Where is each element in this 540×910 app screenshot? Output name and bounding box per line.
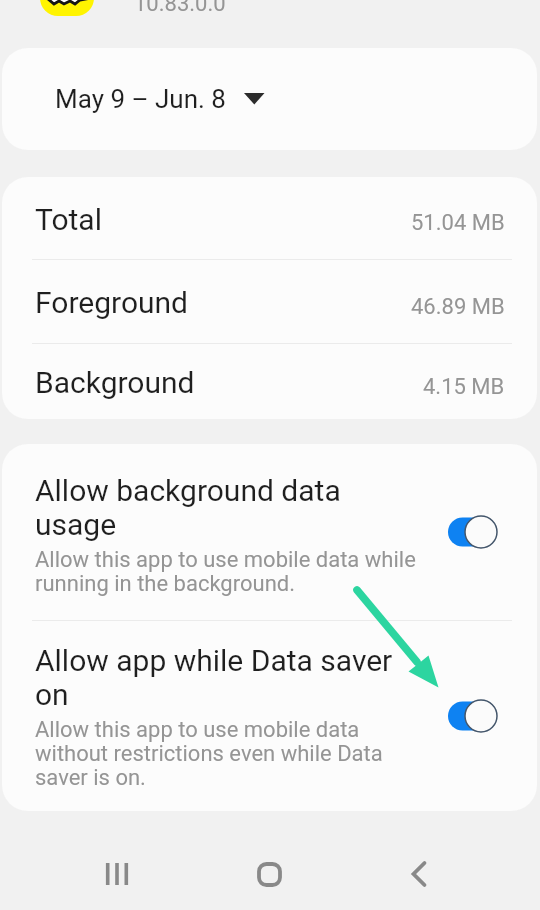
staticText: Background <box>35 365 195 400</box>
staticText: 4.15 MB <box>423 374 505 400</box>
staticText: May 9 – Jun. 8 <box>55 84 226 114</box>
staticText: Allow this app to use mobile data while … <box>35 547 427 596</box>
staticText: 51.04 MB <box>411 210 505 236</box>
staticText: Allow app while Data saver on <box>35 643 427 712</box>
staticText: Foreground <box>35 285 189 320</box>
button[interactable]: Background <box>2 344 537 419</box>
button[interactable]: Back <box>367 838 471 910</box>
button[interactable]: Allow app while Data saver on <box>2 621 537 811</box>
button[interactable]: Toggle setting <box>448 699 500 733</box>
staticText: Allow this app to use mobile data withou… <box>35 717 427 790</box>
button[interactable]: Home <box>217 838 321 910</box>
button[interactable]: Foreground <box>2 260 537 343</box>
button[interactable]: Allow background data usage <box>2 444 537 620</box>
button[interactable]: May 9 – Jun. 8 <box>2 48 537 150</box>
staticText: Total <box>35 202 102 237</box>
staticText: 46.89 MB <box>411 294 505 320</box>
staticText: Allow background data usage <box>35 473 427 542</box>
button[interactable]: Recent apps <box>65 838 169 910</box>
button[interactable]: Toggle setting <box>448 515 500 549</box>
button[interactable]: 10.83.0.0 <box>0 0 540 40</box>
button[interactable]: Total <box>2 177 537 259</box>
staticText: 10.83.0.0 <box>134 0 226 17</box>
